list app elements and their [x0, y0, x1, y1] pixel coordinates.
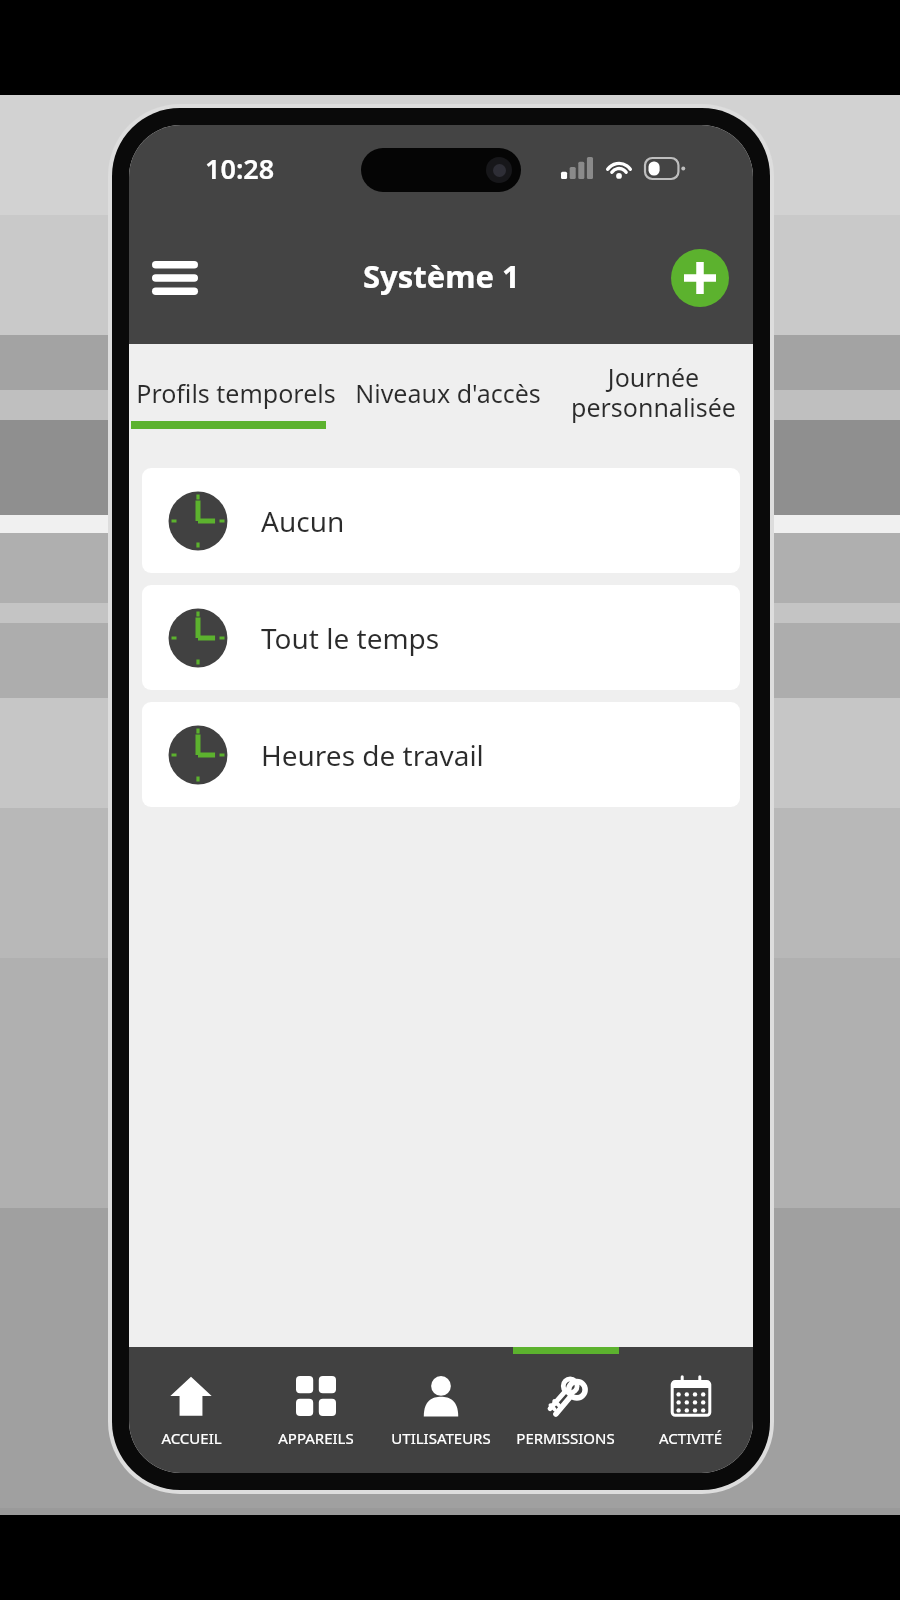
button[interactable]: Heures de travail	[142, 702, 740, 807]
staticText: UTILISATEURS	[391, 1428, 491, 1448]
button[interactable]: UTILISATEURS	[378, 1347, 503, 1473]
staticText: Journée personnalisée	[571, 360, 736, 425]
button[interactable]: ACTIVITÉ	[628, 1347, 753, 1473]
staticText: Tout le temps	[261, 619, 440, 657]
staticText: Profils temporels	[136, 376, 336, 410]
button[interactable]: Menu	[145, 248, 205, 308]
button[interactable]: APPAREILS	[253, 1347, 378, 1473]
button[interactable]: Profils temporels	[129, 344, 343, 457]
button[interactable]: PERMISSIONS	[503, 1347, 628, 1473]
staticText: Aucun	[261, 502, 345, 540]
button[interactable]: Aucun	[142, 468, 740, 573]
staticText: PERMISSIONS	[516, 1428, 615, 1448]
button[interactable]: ACCUEIL	[129, 1347, 253, 1473]
staticText: Système 1	[363, 255, 520, 297]
button[interactable]: Add	[671, 249, 729, 307]
staticText: Heures de travail	[261, 736, 484, 774]
staticText: 10:28	[205, 150, 275, 187]
button[interactable]: Journée personnalisée	[553, 344, 753, 457]
button[interactable]: Niveaux d'accès	[343, 344, 553, 457]
staticText: ACTIVITÉ	[659, 1428, 722, 1448]
staticText: Niveaux d'accès	[355, 376, 541, 410]
staticText: APPAREILS	[278, 1428, 354, 1448]
staticText: ACCUEIL	[161, 1428, 222, 1448]
button[interactable]: Tout le temps	[142, 585, 740, 690]
